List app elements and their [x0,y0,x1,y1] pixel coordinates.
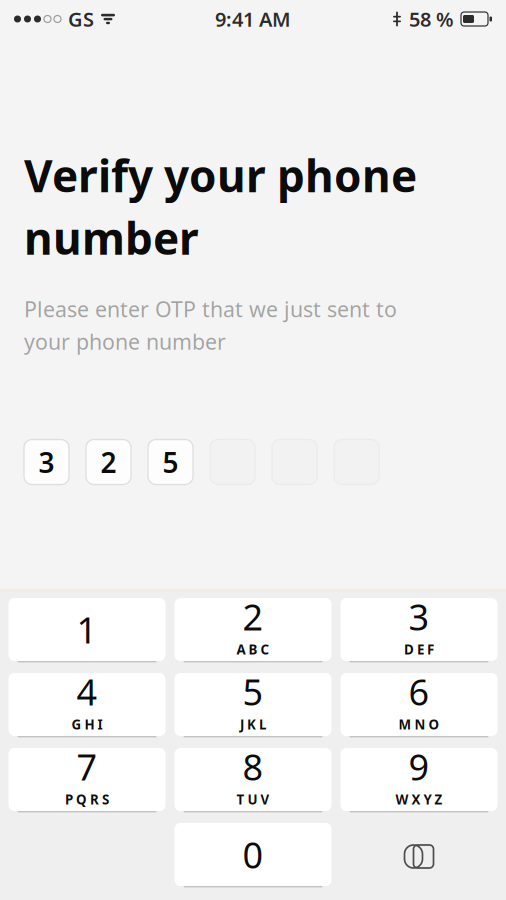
staticText: W X Y Z [395,791,442,808]
staticText: J K L [240,716,266,733]
button[interactable]: 9 [340,748,497,815]
staticText: Verify your phone [24,146,417,204]
staticText: number [24,208,199,267]
staticText: 2 [242,593,263,640]
button[interactable]: 1 [8,598,165,665]
staticText: 4 [76,668,97,715]
staticText: your phone number [24,327,226,355]
staticText: D E F [404,641,434,658]
button[interactable]: 7 [8,748,165,815]
staticText: P Q R S [65,791,109,808]
staticText: GS [68,6,94,32]
button[interactable]: 6 [340,673,497,740]
staticText: 5 [162,443,178,481]
button[interactable]: 5 [174,673,331,740]
staticText: 9 [408,743,429,790]
staticText: 6 [408,668,429,715]
staticText: 3 [408,593,429,640]
staticText: M N O [398,716,439,733]
staticText: 58 % [409,6,454,32]
button[interactable]: 2 [174,598,331,665]
staticText: Please enter OTP that we just sent to [24,295,397,323]
staticText: 1 [76,606,97,653]
button[interactable]: 3 [340,598,497,665]
staticText: 8 [242,743,263,790]
staticText: 5 [242,668,263,715]
staticText: 9:41 AM [215,6,291,32]
staticText: A B C [236,641,269,658]
button[interactable]: 8 [174,748,331,815]
staticText: 0 [242,831,263,878]
staticText: G H I [71,716,102,733]
staticText: T U V [236,791,269,808]
staticText: 7 [76,743,97,790]
staticText: 3 [38,443,54,481]
button[interactable]: 0 [174,823,331,890]
button[interactable]: Delete [340,823,497,890]
staticText: 2 [100,443,116,481]
button[interactable]: 4 [8,673,165,740]
